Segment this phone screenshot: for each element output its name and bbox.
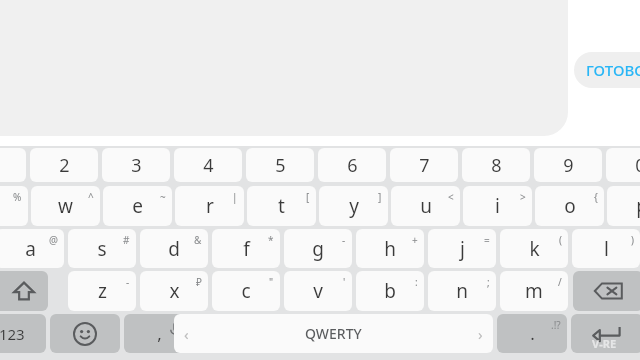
button[interactable]: x [140,271,208,311]
staticText: 0 [635,153,640,178]
staticText: ‹ [184,324,189,344]
button[interactable]: c [212,271,280,311]
button[interactable]: 4 [174,148,242,182]
button[interactable]: f [212,229,280,268]
button[interactable]: u [391,186,460,226]
staticText: V-RE [592,336,617,351]
button[interactable]: z [68,271,136,311]
button[interactable]: 2 [30,148,98,182]
button[interactable]: e [103,186,172,226]
button[interactable]: i [463,186,532,226]
staticText: / [558,275,562,289]
button[interactable]: QWERTY [174,314,493,353]
button[interactable]: p [607,186,640,226]
button[interactable]: Period [497,314,567,353]
button[interactable]: l [572,229,640,268]
button[interactable]: w [31,186,100,226]
button[interactable]: m [500,271,568,311]
button[interactable]: Backspace [573,271,640,311]
staticText: 5 [275,153,286,178]
staticText: x [169,278,180,304]
button[interactable]: k [500,229,568,268]
staticText: { [594,190,598,204]
staticText: m [525,278,543,304]
staticText: 2 [59,153,70,178]
button[interactable]: 3 [102,148,170,182]
button[interactable]: 8 [462,148,530,182]
staticText: ' [343,275,346,289]
staticText: = [484,233,490,247]
button[interactable]: g [284,229,352,268]
staticText: " [269,275,274,289]
button[interactable]: ?123 [0,314,46,353]
staticText: ) [631,233,634,247]
staticText: 4 [203,153,214,178]
button[interactable]: b [356,271,424,311]
staticText: w [58,193,73,219]
staticText: ГОТОВО [586,60,640,80]
staticText: 9 [563,153,574,178]
button[interactable]: 6 [318,148,386,182]
button[interactable]: v [284,271,352,311]
staticText: ₽ [196,275,202,289]
staticText: s [97,236,107,262]
button[interactable]: r [175,186,244,226]
staticText: d [168,236,180,262]
button[interactable]: 9 [534,148,602,182]
staticText: | [232,190,238,204]
button[interactable]: Shift [0,271,48,311]
staticText: ^ [88,190,94,204]
button[interactable]: 7 [390,148,458,182]
staticText: * [268,233,274,247]
staticText: & [194,233,202,247]
staticText: a [25,236,36,262]
button[interactable]: h [356,229,424,268]
staticText: ?123 [0,324,25,344]
staticText: @ [49,233,58,247]
staticText: f [243,236,250,262]
button[interactable]: d [140,229,208,268]
button[interactable]: t [247,186,316,226]
button[interactable]: 5 [246,148,314,182]
staticText: ~ [160,190,166,204]
staticText: y [349,193,359,219]
staticText: > [520,190,526,204]
button[interactable]: y [319,186,388,226]
staticText: t [278,193,285,219]
button[interactable]: j [428,229,496,268]
staticText: › [478,324,483,344]
staticText: l [604,236,609,262]
staticText: e [132,193,143,219]
staticText: : [415,275,418,289]
staticText: c [241,278,251,304]
button[interactable]: Enter [571,314,640,353]
staticText: n [456,278,468,304]
staticText: r [206,193,214,219]
staticText: ] [378,190,382,204]
button[interactable]: q [0,186,28,226]
staticText: - [126,275,130,289]
staticText: QWERTY [305,324,362,343]
button[interactable]: ГОТОВО [574,52,640,88]
staticText: < [448,190,454,204]
staticText: [ [306,190,310,204]
staticText: - [342,233,346,247]
staticText: z [98,278,107,304]
button[interactable]: a [0,229,64,268]
button[interactable]: 0 [606,148,640,182]
staticText: 8 [491,153,502,178]
button[interactable]: n [428,271,496,311]
button[interactable]: Emoji [50,314,120,353]
staticText: 6 [347,153,358,178]
staticText: + [412,233,418,247]
button[interactable]: o [535,186,604,226]
staticText: u [420,193,432,219]
button[interactable]: s [68,229,136,268]
staticText: .!? [551,318,561,332]
staticText: 3 [131,153,142,178]
staticText: , [157,322,162,345]
button[interactable]: Comma [124,314,194,353]
staticText: o [564,193,576,219]
staticText: ; [487,275,490,289]
